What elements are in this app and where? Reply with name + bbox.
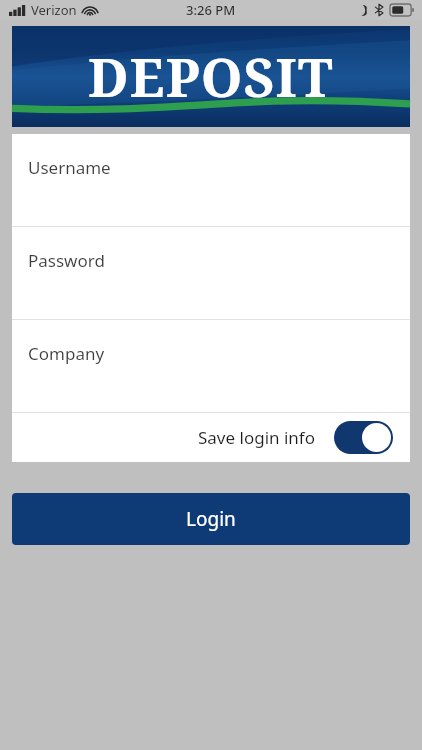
button[interactable]: Save login info toggle, on	[334, 421, 393, 454]
button[interactable]: Username	[12, 134, 410, 226]
staticText: Username	[28, 156, 111, 179]
button[interactable]: Password	[12, 227, 410, 319]
staticText: Login	[186, 506, 236, 532]
button[interactable]: Company	[12, 320, 410, 412]
staticText: Company	[28, 342, 105, 365]
staticText: Verizon	[31, 1, 77, 19]
staticText: Save login info	[198, 426, 315, 449]
staticText: 3:26 PM	[186, 1, 236, 19]
button[interactable]: Save login info	[12, 413, 410, 462]
button[interactable]: Login	[12, 493, 410, 545]
staticText: Password	[28, 249, 105, 272]
staticText: DEPOSIT	[88, 40, 334, 112]
